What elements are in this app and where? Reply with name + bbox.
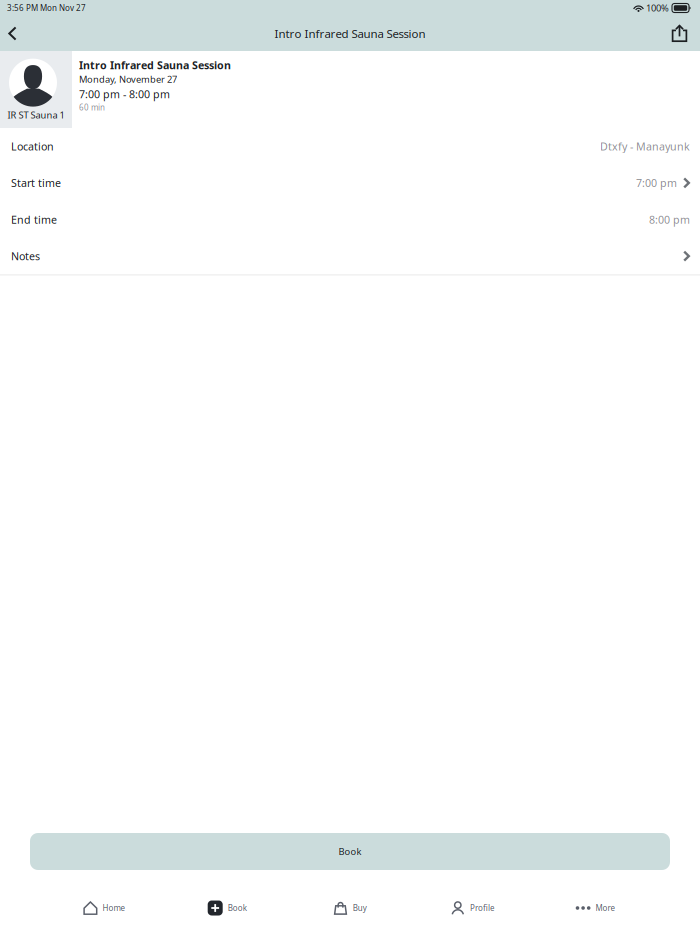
button[interactable]: End time xyxy=(0,201,700,238)
staticText: Buy xyxy=(353,903,367,913)
staticText: End time xyxy=(11,212,57,227)
button[interactable]: Notes xyxy=(0,238,700,274)
button[interactable]: Share xyxy=(659,16,700,51)
button[interactable]: Profile xyxy=(411,870,534,934)
button[interactable]: More xyxy=(534,870,657,934)
staticText: More xyxy=(596,903,616,913)
staticText: Dtxfy - Manayunk xyxy=(600,139,690,153)
staticText: Profile xyxy=(470,903,495,913)
staticText: Book xyxy=(228,903,247,913)
button[interactable]: Start time xyxy=(0,165,700,201)
staticText: Intro Infrared Sauna Session xyxy=(274,26,425,41)
staticText: Location xyxy=(11,139,54,153)
staticText: 100% xyxy=(646,2,669,14)
staticText: Intro Infrared Sauna Session xyxy=(79,58,231,72)
button[interactable]: Location xyxy=(0,128,700,165)
staticText: 8:00 pm xyxy=(649,212,690,227)
button[interactable]: Buy xyxy=(289,870,411,934)
staticText: Monday, November 27 xyxy=(79,73,177,85)
button[interactable]: Book xyxy=(30,833,670,870)
staticText: IR ST Sauna 1 xyxy=(7,109,64,121)
staticText: Notes xyxy=(11,249,40,263)
staticText: Home xyxy=(103,903,126,913)
staticText: 7:00 pm xyxy=(636,176,677,190)
staticText: 3:56 PM Mon Nov 27 xyxy=(7,3,86,13)
staticText: 60 min xyxy=(79,102,105,113)
staticText: Book xyxy=(338,845,361,858)
button[interactable]: Back xyxy=(0,16,29,51)
staticText: Start time xyxy=(11,176,61,190)
button[interactable]: Book xyxy=(166,870,289,934)
staticText: 7:00 pm - 8:00 pm xyxy=(79,87,170,101)
button[interactable]: Home xyxy=(43,870,166,934)
